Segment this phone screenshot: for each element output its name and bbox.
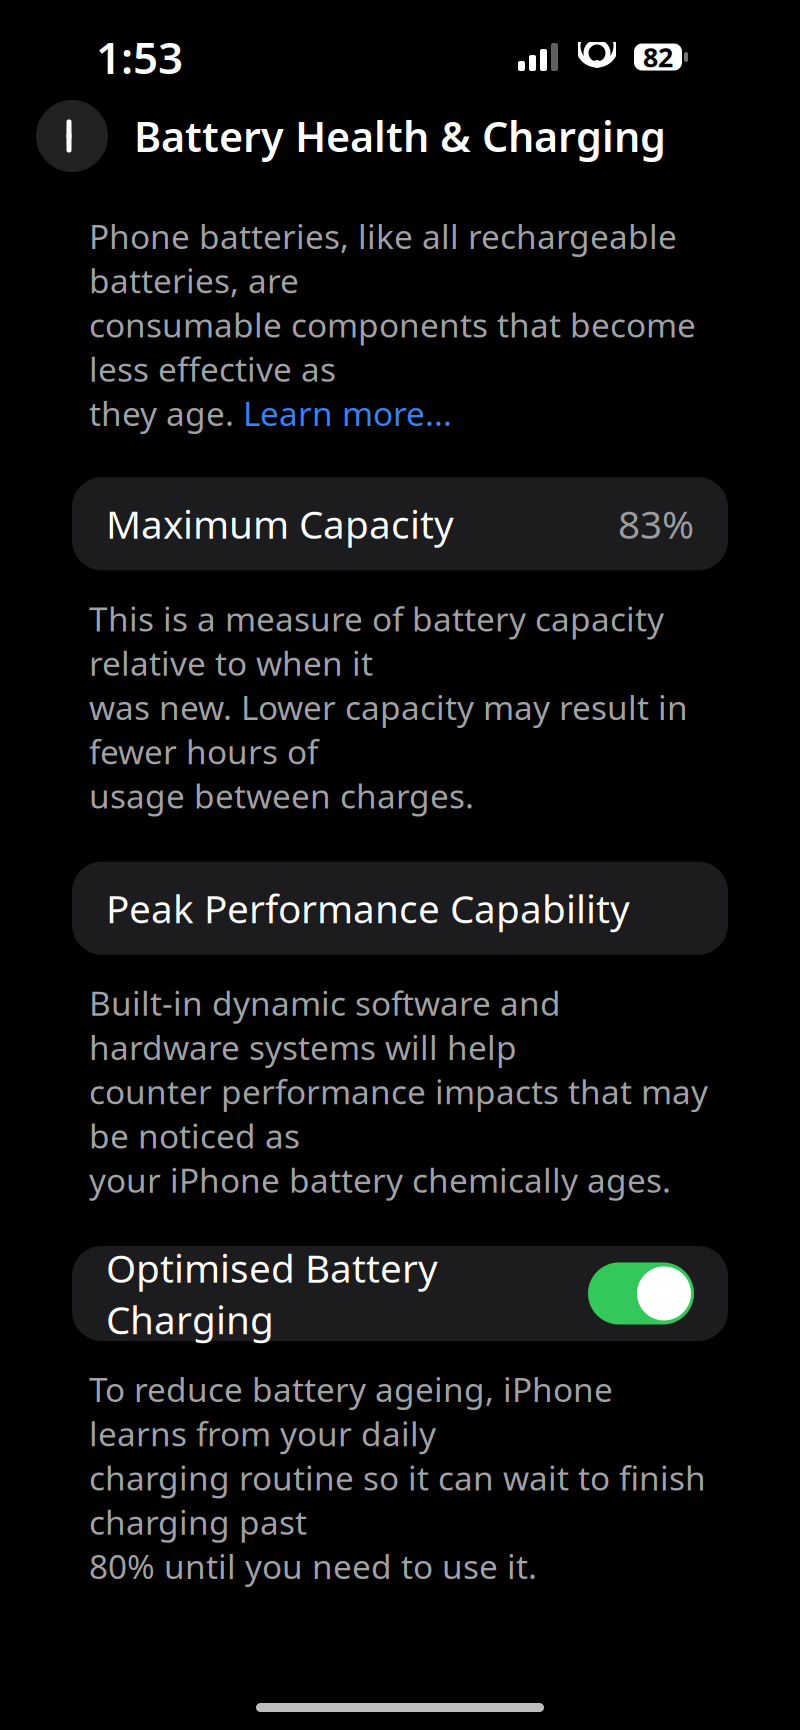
staticText: 80% until you need to use it.	[89, 1544, 537, 1588]
button[interactable]: Learn more...	[243, 391, 452, 435]
staticText: 83%	[618, 498, 694, 549]
staticText: Peak Performance Capability	[106, 882, 630, 934]
staticText: To reduce battery ageing, iPhone learns …	[89, 1367, 613, 1455]
button[interactable]: Back	[36, 100, 108, 172]
staticText: Phone batteries, like all rechargeable b…	[89, 214, 677, 302]
staticText: Built-in dynamic software and hardware s…	[89, 981, 561, 1069]
staticText: consumable components that become less e…	[89, 302, 696, 391]
staticText: usage between charges.	[89, 773, 474, 818]
staticText: was new. Lower capacity may result in fe…	[89, 685, 688, 773]
staticText: Maximum Capacity	[106, 498, 454, 549]
staticText: This is a measure of battery capacity re…	[89, 596, 664, 685]
staticText: Optimised Battery Charging	[106, 1242, 438, 1345]
button[interactable]: Optimised Battery Charging	[72, 1246, 728, 1341]
staticText: charging routine so it can wait to finis…	[89, 1455, 706, 1544]
button[interactable]: Peak Performance Capability	[72, 862, 728, 955]
staticText: 1:53	[96, 28, 183, 86]
staticText: Battery Health & Charging	[134, 109, 666, 163]
staticText: they age.	[89, 391, 243, 435]
staticText: counter performance impacts that may be …	[89, 1069, 708, 1158]
button[interactable]: Maximum Capacity	[72, 477, 728, 570]
staticText: 82	[643, 39, 673, 75]
staticText: Learn more...	[243, 391, 452, 435]
staticText: your iPhone battery chemically ages.	[89, 1158, 671, 1202]
